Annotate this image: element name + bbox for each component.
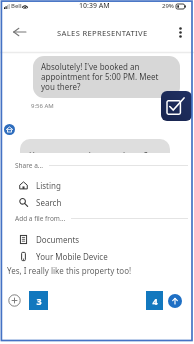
staticText: Bell (11, 2, 22, 10)
button[interactable]: More options (166, 16, 194, 48)
staticText: Documents (36, 234, 80, 245)
staticText: Search (36, 197, 62, 208)
staticText: 29% (162, 2, 174, 10)
staticText: Your Mobile Device (36, 251, 108, 262)
staticText: 9:56 AM (31, 102, 54, 110)
button[interactable]: Listing (7, 178, 188, 192)
button[interactable]: 3 (29, 291, 48, 310)
staticText: 10:39 AM (79, 1, 110, 11)
staticText: Listing (36, 180, 61, 191)
button[interactable]: Search (7, 195, 188, 209)
button[interactable]: Compose message (161, 91, 192, 121)
staticText: Add a file from... (15, 214, 66, 223)
staticText: Have you seen the new photos? (29, 150, 148, 161)
button[interactable]: Send (168, 294, 182, 308)
staticText: SALES REPRESENTATIVE (57, 28, 148, 38)
staticText: Share a... (15, 161, 44, 170)
button[interactable]: Documents (7, 232, 188, 246)
button[interactable]: Add attachment (8, 294, 21, 307)
button[interactable]: 4 (146, 291, 163, 310)
staticText: 4 (152, 295, 158, 307)
staticText: Absolutely! I've booked an appointment f… (41, 61, 173, 92)
button[interactable]: Back (0, 16, 38, 48)
staticText: Yes, I really like this property too! (7, 265, 132, 276)
staticText: 3 (36, 295, 42, 307)
button[interactable]: Your Mobile Device (7, 249, 188, 263)
